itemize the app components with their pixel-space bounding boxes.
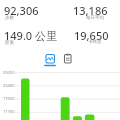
staticText: 19,650 bbox=[74, 28, 109, 43]
staticText: 距离 bbox=[5, 40, 14, 46]
staticText: 卡路里 bbox=[88, 39, 102, 45]
staticText: 149.0 公里 bbox=[4, 28, 58, 43]
staticText: 92,306 bbox=[4, 3, 39, 18]
staticText: 29250 bbox=[3, 70, 15, 75]
button[interactable] bbox=[62, 52, 75, 65]
staticText: 步数 bbox=[5, 15, 14, 21]
staticText: 23400 bbox=[3, 83, 15, 88]
staticText: 13,186 bbox=[73, 3, 108, 18]
staticText: 每日平均 bbox=[86, 15, 104, 21]
staticText: 17550 bbox=[3, 96, 15, 101]
button[interactable] bbox=[43, 52, 57, 67]
staticText: 11700 bbox=[3, 109, 15, 114]
